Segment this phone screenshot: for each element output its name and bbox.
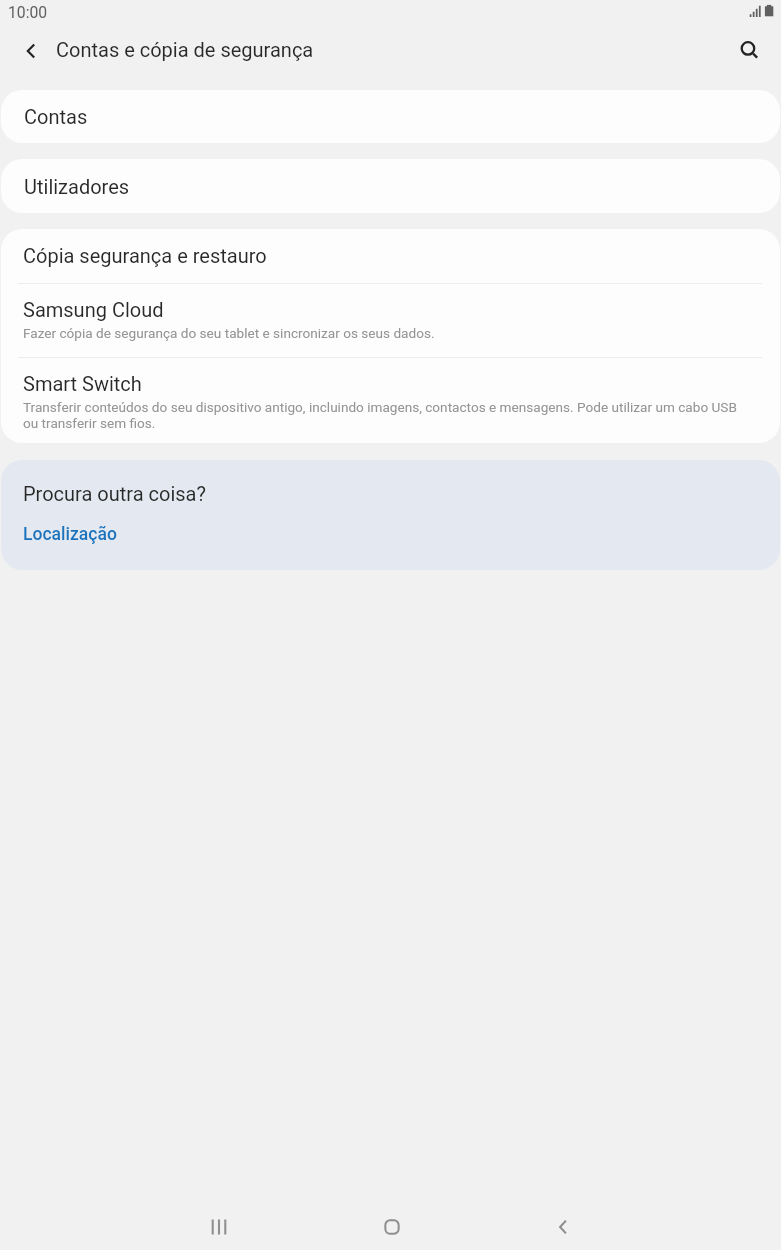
button[interactable]: Contas	[1, 90, 780, 143]
button[interactable]: Back	[539, 1203, 587, 1250]
button[interactable]: Recent apps	[195, 1203, 243, 1250]
button[interactable]: Samsung Cloud	[1, 284, 780, 357]
button[interactable]: Utilizadores	[1, 159, 780, 213]
button[interactable]: Localização	[23, 524, 117, 545]
staticText: 10:00	[8, 3, 48, 21]
staticText: Contas e cópia de segurança	[56, 38, 314, 61]
button[interactable]: Back	[7, 27, 54, 74]
staticText: Cópia segurança e restauro	[23, 244, 267, 267]
staticText: Fazer cópia de segurança do seu tablet e…	[23, 325, 435, 341]
button[interactable]: Search	[725, 26, 773, 74]
button[interactable]: Smart Switch	[1, 358, 780, 443]
staticText: Smart Switch	[23, 372, 142, 395]
staticText: Procura outra coisa?	[23, 482, 206, 505]
staticText: Utilizadores	[24, 175, 130, 198]
button[interactable]: Cópia segurança e restauro	[1, 229, 780, 283]
button[interactable]: Home	[368, 1203, 416, 1250]
staticText: Transferir conteúdos do seu dispositivo …	[23, 399, 747, 431]
staticText: Samsung Cloud	[23, 298, 164, 321]
staticText: Contas	[24, 105, 88, 128]
